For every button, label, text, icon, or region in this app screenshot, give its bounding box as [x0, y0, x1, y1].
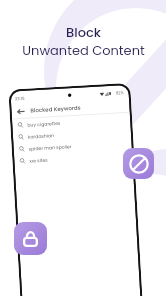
button[interactable]: buy cigarettes [17, 113, 130, 131]
button[interactable]: Back [15, 106, 26, 116]
button[interactable]: spider man spoiler [18, 137, 132, 155]
staticText: 92% [115, 90, 125, 96]
staticText: buy cigarettes [27, 120, 61, 128]
staticText: Blocked Keywords [30, 104, 82, 114]
button[interactable]: xxx sites [19, 149, 133, 167]
button[interactable]: Block content [123, 148, 154, 179]
staticText: xxx sites [29, 157, 48, 164]
button[interactable]: kardashian [18, 125, 131, 143]
staticText: Block [66, 23, 101, 41]
staticText: 23:15 [15, 96, 25, 102]
staticText: Unwanted Content [22, 41, 145, 59]
staticText: kardashian [28, 132, 54, 140]
staticText: spider man spoiler [28, 143, 72, 152]
button[interactable]: Lock [14, 222, 47, 255]
